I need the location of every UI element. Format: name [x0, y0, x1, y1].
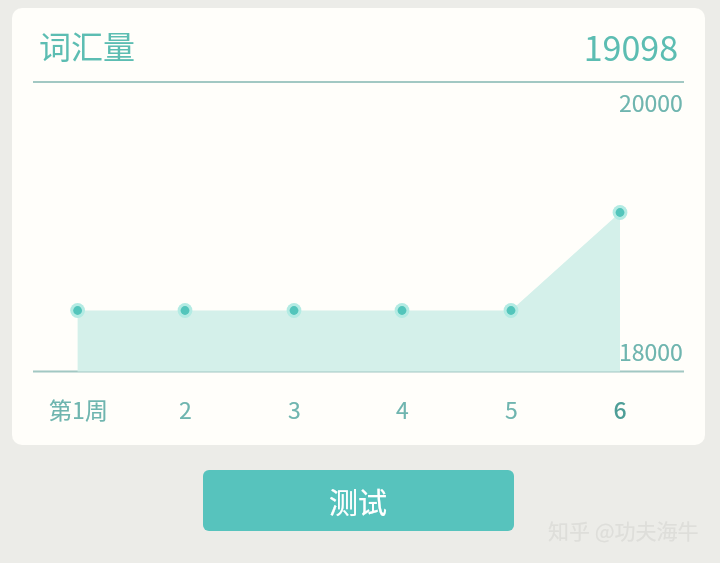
staticText: 第1周 — [49, 392, 108, 425]
other: 知乎 @功夫海牛 — [548, 515, 699, 545]
staticText: 测试 — [329, 480, 388, 522]
button[interactable]: 测试 — [203, 470, 514, 531]
staticText: 知乎 @功夫海牛 — [548, 515, 699, 545]
staticText: 3 — [288, 392, 301, 425]
staticText: 词汇量 — [39, 22, 136, 68]
button[interactable]: 词汇量 — [12, 8, 705, 445]
staticText: 18000 — [619, 334, 683, 367]
staticText: 20000 — [619, 85, 683, 118]
staticText: 2 — [179, 392, 192, 425]
staticText: 6 — [613, 392, 627, 425]
staticText: 4 — [396, 392, 409, 425]
staticText: 19098 — [484, 22, 678, 445]
staticText: 5 — [505, 392, 518, 425]
